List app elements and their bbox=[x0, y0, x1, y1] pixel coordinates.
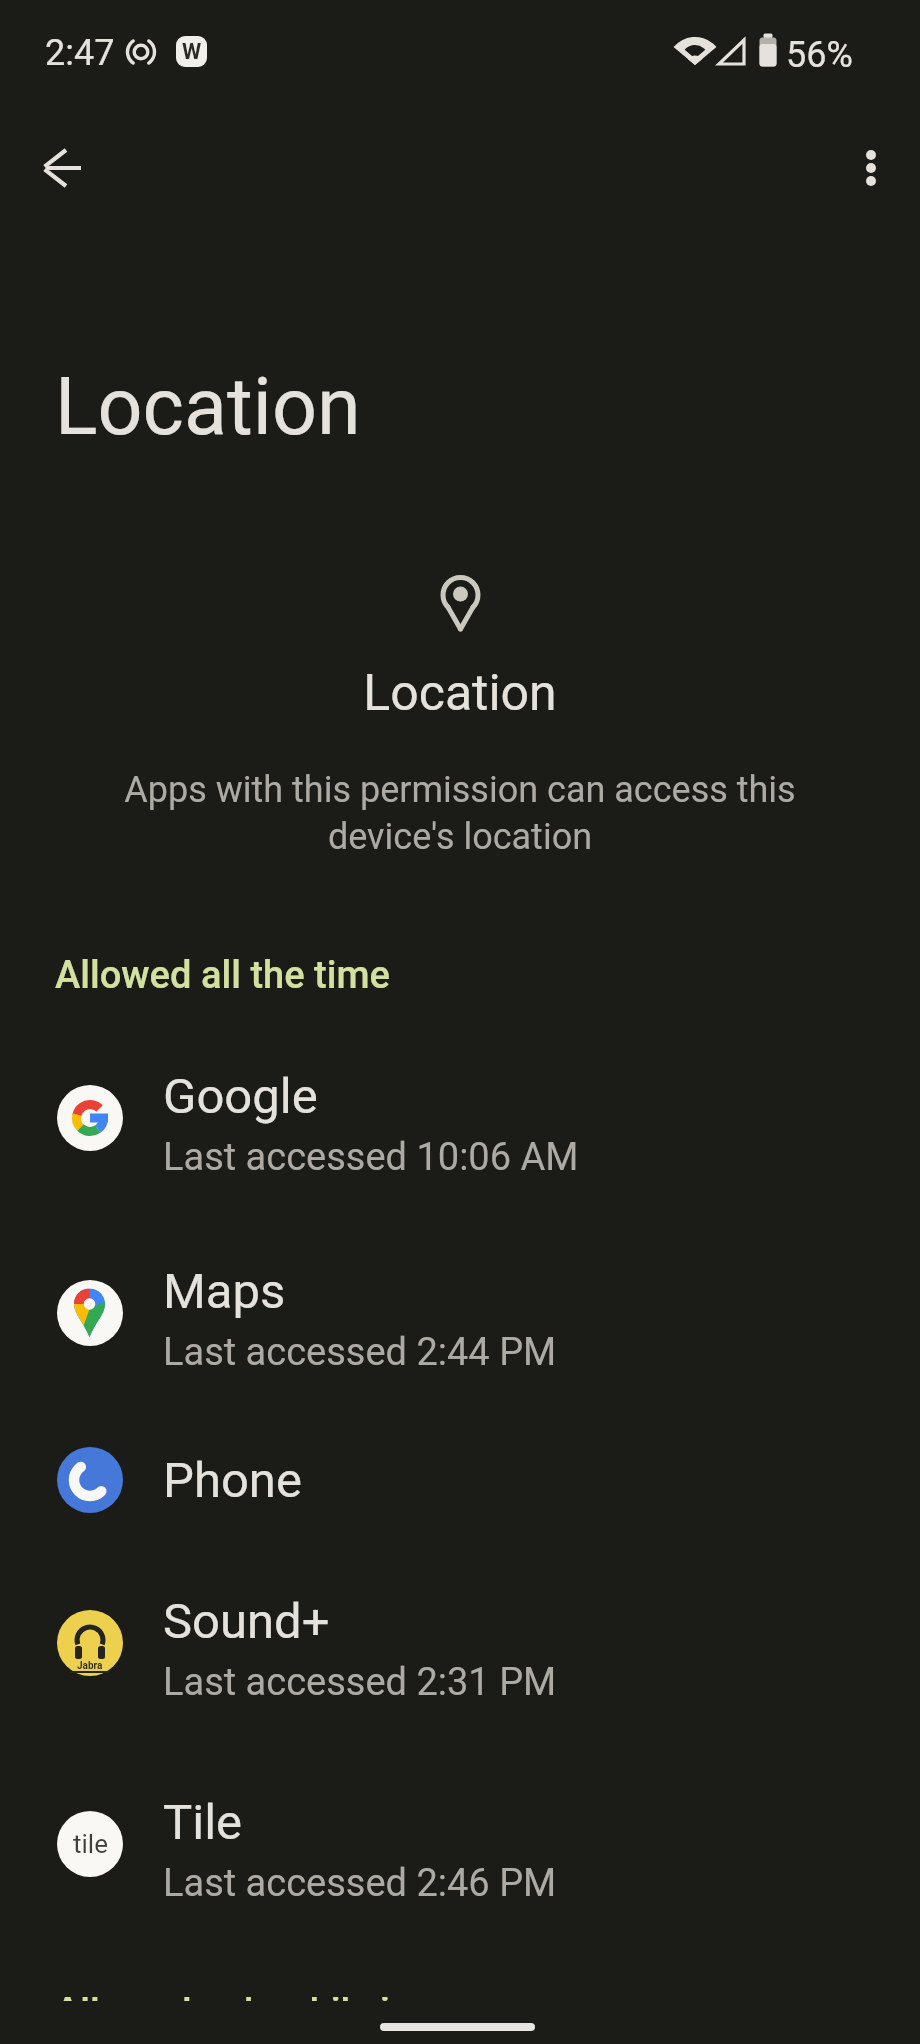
staticText: Phone bbox=[163, 1452, 302, 1509]
button[interactable] bbox=[40, 144, 88, 192]
button[interactable] bbox=[0, 1231, 920, 1395]
staticText: W bbox=[182, 39, 202, 65]
staticText: Location bbox=[55, 361, 361, 454]
button[interactable] bbox=[846, 144, 894, 192]
staticText: 56% bbox=[786, 34, 853, 76]
staticText: tile bbox=[73, 1829, 108, 1859]
staticText: Apps with this permission can access thi… bbox=[0, 769, 920, 858]
button[interactable] bbox=[0, 1036, 920, 1200]
button[interactable] bbox=[0, 1762, 920, 1926]
button[interactable] bbox=[0, 1398, 920, 1562]
staticText: Last accessed 2:46 PM bbox=[163, 1861, 557, 1906]
staticText: 2:47 bbox=[45, 32, 115, 74]
staticText: Last accessed 2:31 PM bbox=[163, 1660, 557, 1705]
staticText: Allowed only while in use bbox=[55, 1997, 475, 2001]
staticText: Last accessed 2:44 PM bbox=[163, 1330, 557, 1375]
staticText: Google bbox=[163, 1068, 318, 1125]
button[interactable] bbox=[0, 1561, 920, 1725]
staticText: Tile bbox=[163, 1794, 243, 1851]
staticText: Jabra bbox=[77, 1660, 103, 1672]
staticText: Maps bbox=[163, 1263, 286, 1320]
staticText: Sound+ bbox=[163, 1593, 330, 1650]
staticText: Last accessed 10:06 AM bbox=[163, 1135, 579, 1180]
staticText: Location bbox=[0, 664, 920, 723]
staticText: Allowed all the time bbox=[55, 953, 390, 998]
